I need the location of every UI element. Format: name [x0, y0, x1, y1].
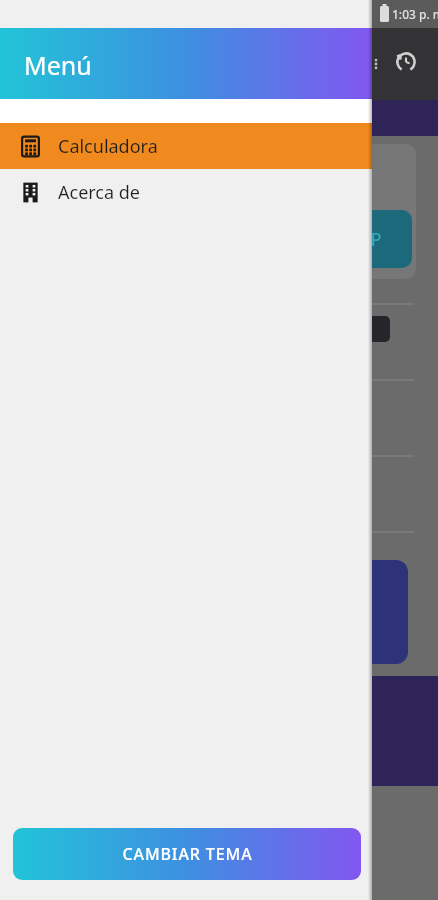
button[interactable]: Acerca de — [0, 169, 372, 215]
staticText: Menú — [24, 48, 92, 82]
staticText: 1:03 p. m. — [392, 6, 438, 22]
button[interactable]: History — [391, 47, 421, 77]
button[interactable]: CAMBIAR TEMA — [13, 828, 361, 880]
staticText: Acerca de — [58, 180, 141, 205]
button[interactable]: LP — [330, 210, 412, 268]
button[interactable]: More options — [369, 57, 383, 71]
staticText: Calculadora — [58, 134, 158, 159]
staticText: LP — [361, 227, 382, 252]
staticText: CAMBIAR TEMA — [122, 843, 253, 865]
button[interactable]: Calculadora — [0, 123, 372, 169]
